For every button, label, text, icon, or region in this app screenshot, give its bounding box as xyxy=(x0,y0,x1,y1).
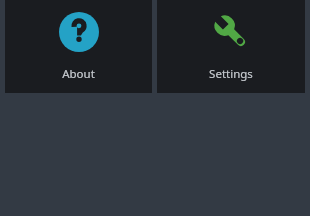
staticText: About xyxy=(62,66,95,82)
button[interactable]: Settings xyxy=(157,0,305,93)
button[interactable]: About xyxy=(5,0,152,93)
staticText: Settings xyxy=(209,66,253,82)
